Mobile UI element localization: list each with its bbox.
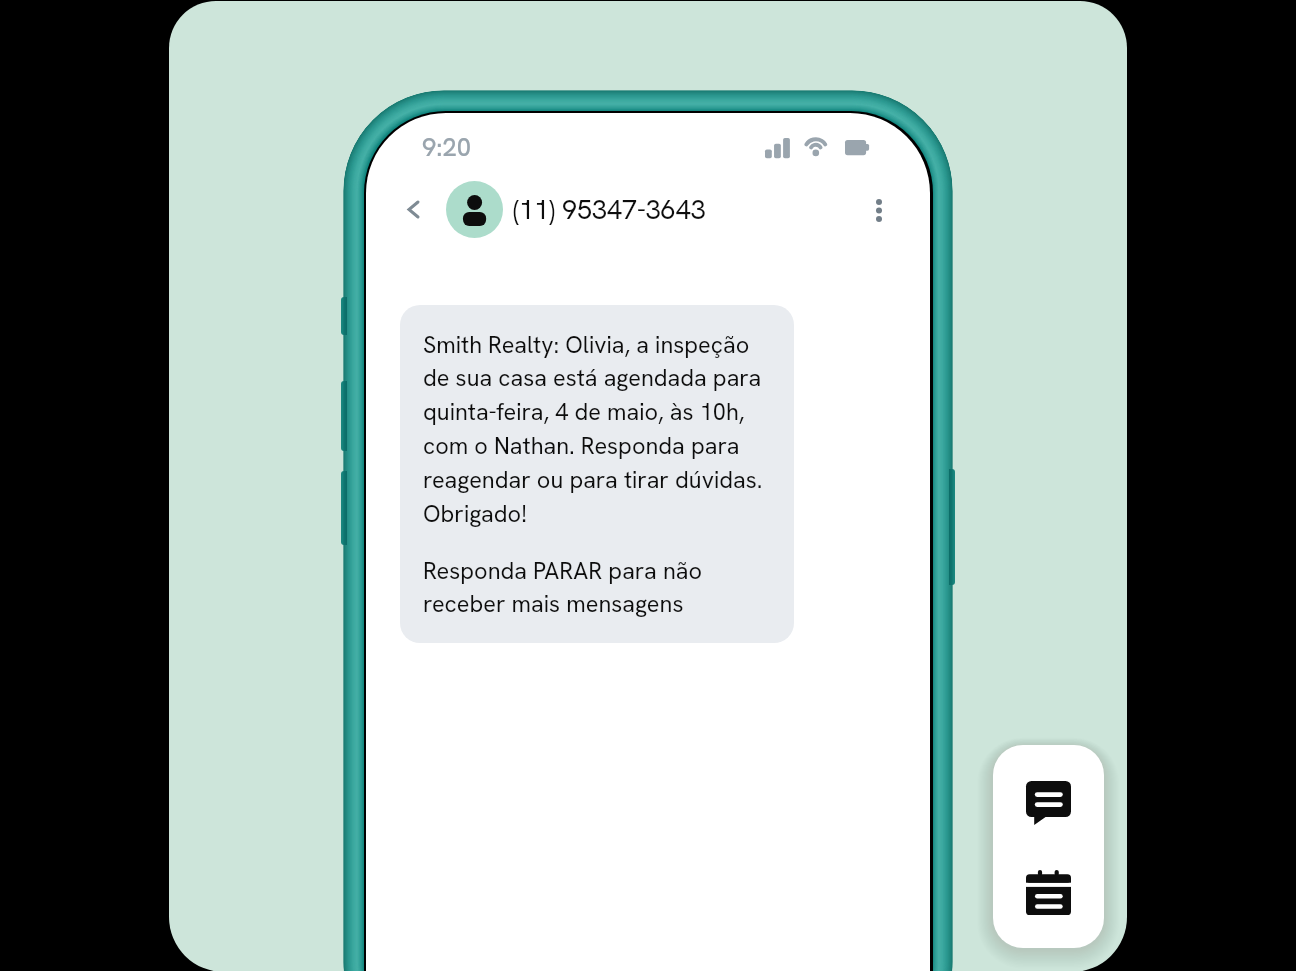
button[interactable]: Smith Realty: Olivia, a inspeção de sua … — [400, 305, 794, 643]
staticText: (11) 95347-3643 — [513, 192, 706, 227]
staticText: Smith Realty: Olivia, a inspeção de sua … — [423, 329, 763, 529]
button[interactable]: (11) 95347-3643 — [446, 181, 706, 238]
staticText: 9:20 — [422, 130, 471, 163]
button[interactable]: Calendar — [1016, 860, 1081, 924]
button[interactable]: Messages — [1016, 771, 1081, 835]
button[interactable]: More options — [859, 190, 899, 230]
staticText: Responda PARAR para não receber mais men… — [423, 555, 703, 619]
button[interactable]: Back — [393, 189, 433, 229]
